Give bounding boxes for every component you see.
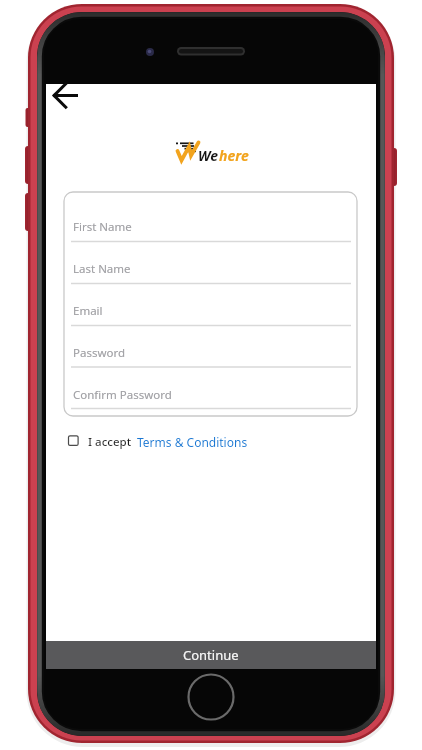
staticText: First Name — [73, 219, 132, 235]
staticText: I accept — [88, 434, 132, 450]
button[interactable] — [50, 82, 82, 112]
staticText: Confirm Password — [73, 387, 172, 403]
staticText: Password — [73, 345, 126, 361]
staticText: here — [219, 146, 249, 165]
staticText: Email — [73, 303, 103, 319]
button[interactable]: Confirm Password — [65, 374, 356, 415]
button[interactable]: Email — [65, 290, 356, 331]
button[interactable]: Terms & Conditions — [137, 434, 248, 450]
button[interactable]: First Name — [65, 206, 356, 247]
button[interactable]: Continue — [46, 641, 376, 669]
button[interactable] — [66, 433, 81, 448]
button[interactable]: Last Name — [65, 248, 356, 289]
button[interactable]: Password — [65, 332, 356, 373]
staticText: We — [198, 146, 219, 165]
staticText: Last Name — [73, 261, 131, 277]
staticText: Continue — [183, 646, 239, 664]
